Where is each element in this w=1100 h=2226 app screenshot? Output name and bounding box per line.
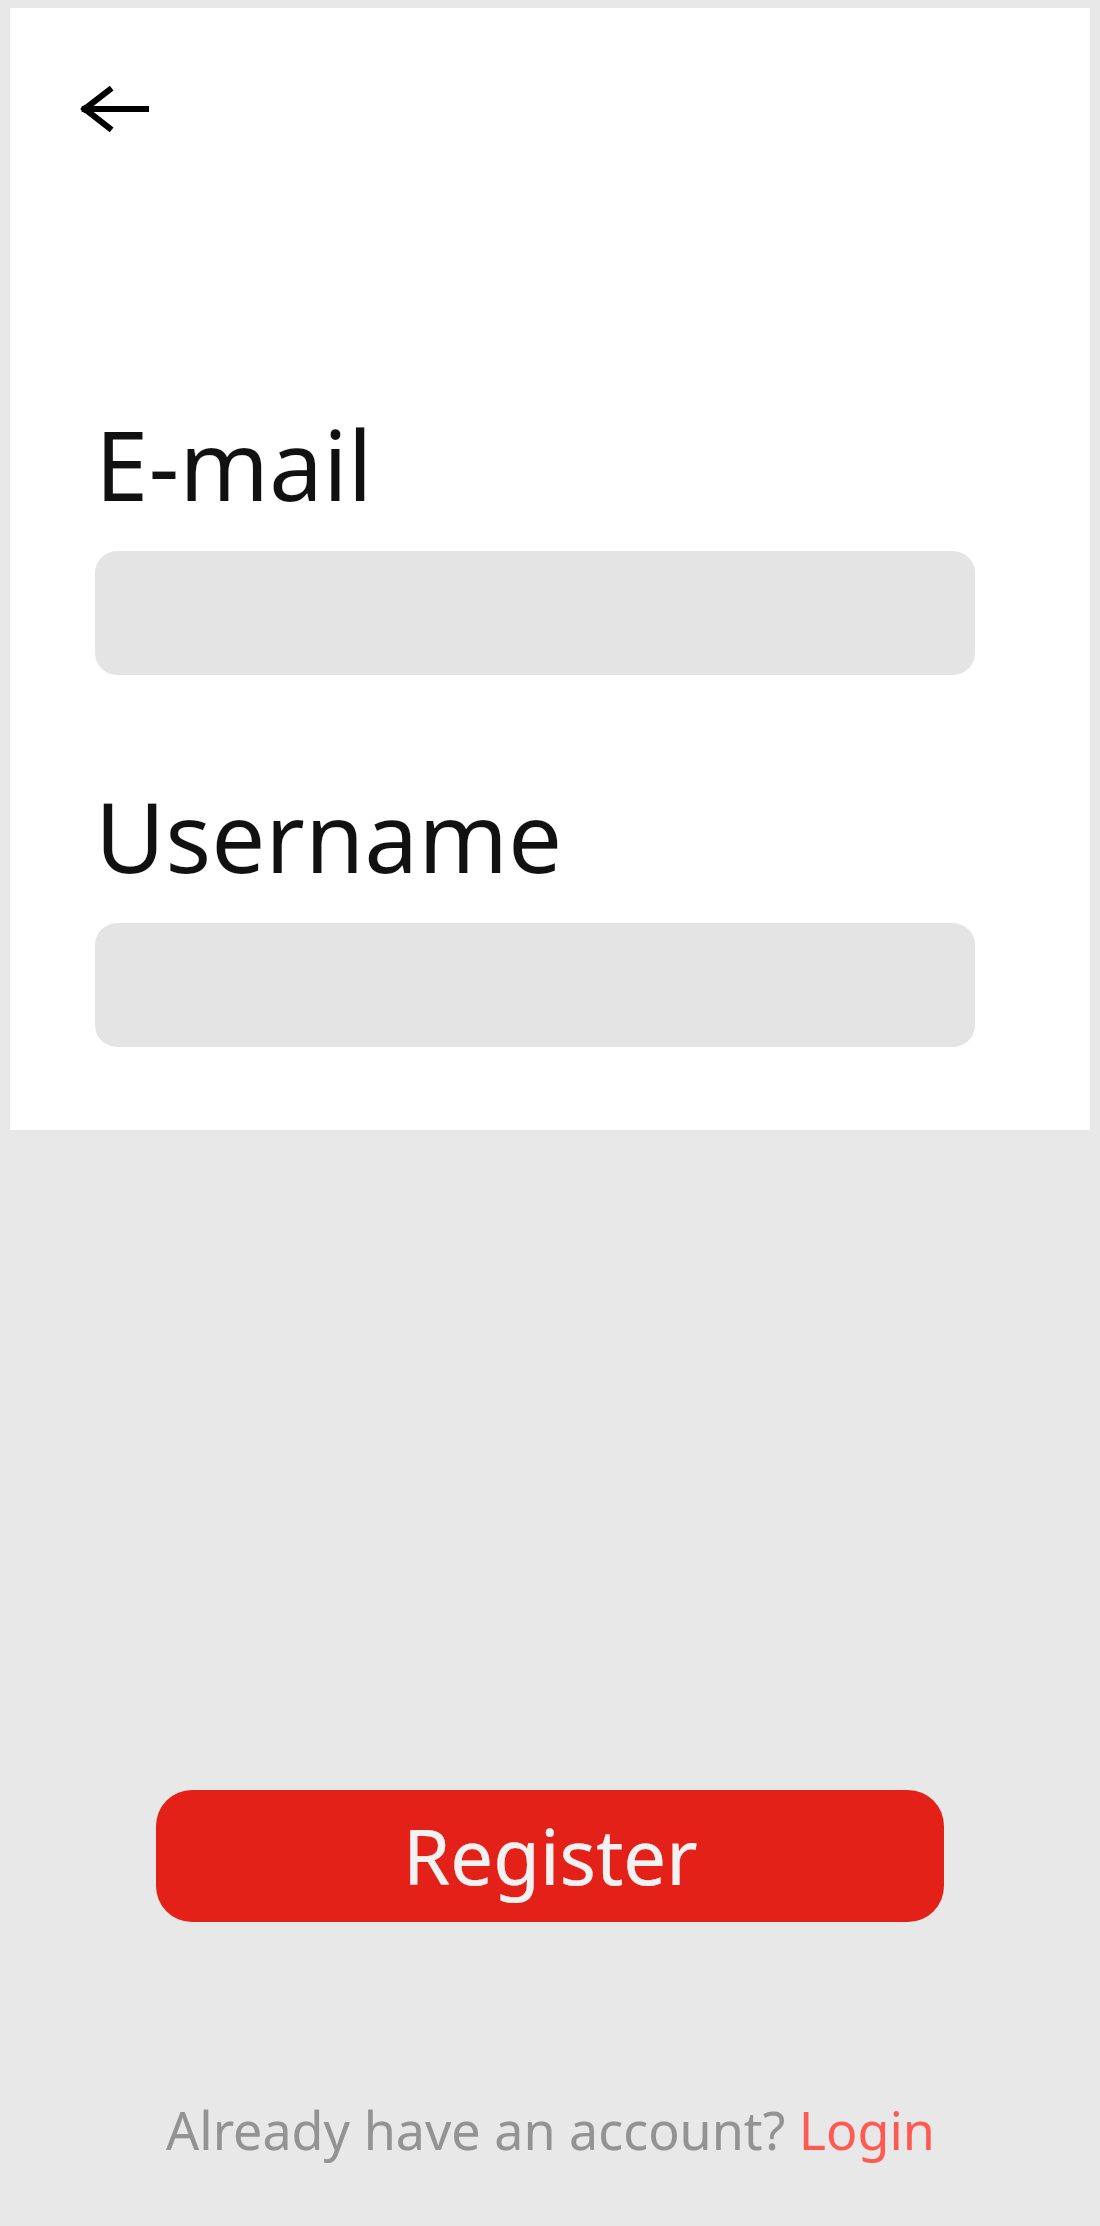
button[interactable]: Register [156,1790,944,1922]
staticText: E-mail [95,398,373,529]
staticText: Username [95,770,563,901]
button[interactable]: Back [62,56,168,162]
staticText: Register [403,1804,698,1908]
button[interactable]: Already have an account? Login [158,2090,943,2169]
staticText: Already have an account? Login [166,2094,935,2165]
